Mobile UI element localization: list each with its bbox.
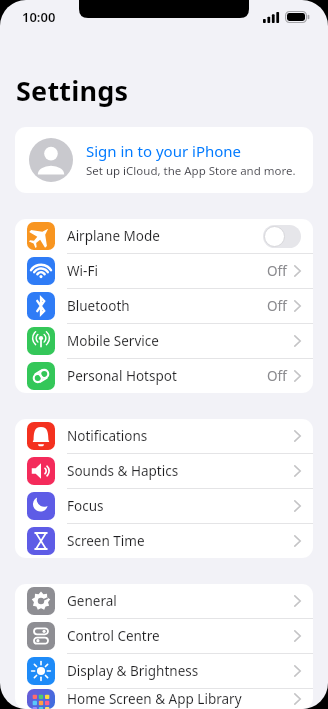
button[interactable]: Airplane Mode xyxy=(15,219,313,253)
staticText: Sign in to your iPhone xyxy=(86,141,242,161)
button[interactable]: Sign in to your iPhone xyxy=(15,127,313,193)
button[interactable]: Sounds & Haptics xyxy=(15,454,313,488)
button[interactable]: Focus xyxy=(15,489,313,523)
staticText: Off xyxy=(267,367,287,385)
staticText: Notifications xyxy=(67,427,294,445)
staticText: Bluetooth xyxy=(67,297,267,315)
staticText: Screen Time xyxy=(67,532,294,550)
button[interactable]: Wi-Fi xyxy=(15,254,313,288)
staticText: Mobile Service xyxy=(67,332,294,350)
staticText: Airplane Mode xyxy=(67,227,263,245)
staticText: Wi-Fi xyxy=(67,262,267,280)
button[interactable]: Notifications xyxy=(15,419,313,453)
button[interactable]: Control Centre xyxy=(15,619,313,653)
button[interactable]: Home Screen & App Library xyxy=(15,689,313,709)
staticText: Control Centre xyxy=(67,627,294,645)
button[interactable]: Display & Brightness xyxy=(15,654,313,688)
staticText: General xyxy=(67,592,294,610)
staticText: Off xyxy=(267,297,287,315)
staticText: Set up iCloud, the App Store and more. xyxy=(86,163,296,179)
button[interactable]: General xyxy=(15,584,313,618)
button[interactable]: Personal Hotspot xyxy=(15,359,313,393)
button[interactable]: Screen Time xyxy=(15,524,313,558)
staticText: Personal Hotspot xyxy=(67,367,267,385)
button[interactable]: Bluetooth xyxy=(15,289,313,323)
staticText: Settings xyxy=(16,72,129,109)
staticText: 10:00 xyxy=(22,8,56,26)
staticText: Sounds & Haptics xyxy=(67,462,294,480)
staticText: Focus xyxy=(67,497,294,515)
staticText: Home Screen & App Library xyxy=(67,690,294,708)
button[interactable]: Mobile Service xyxy=(15,324,313,358)
staticText: Off xyxy=(267,262,287,280)
staticText: Display & Brightness xyxy=(67,662,294,680)
